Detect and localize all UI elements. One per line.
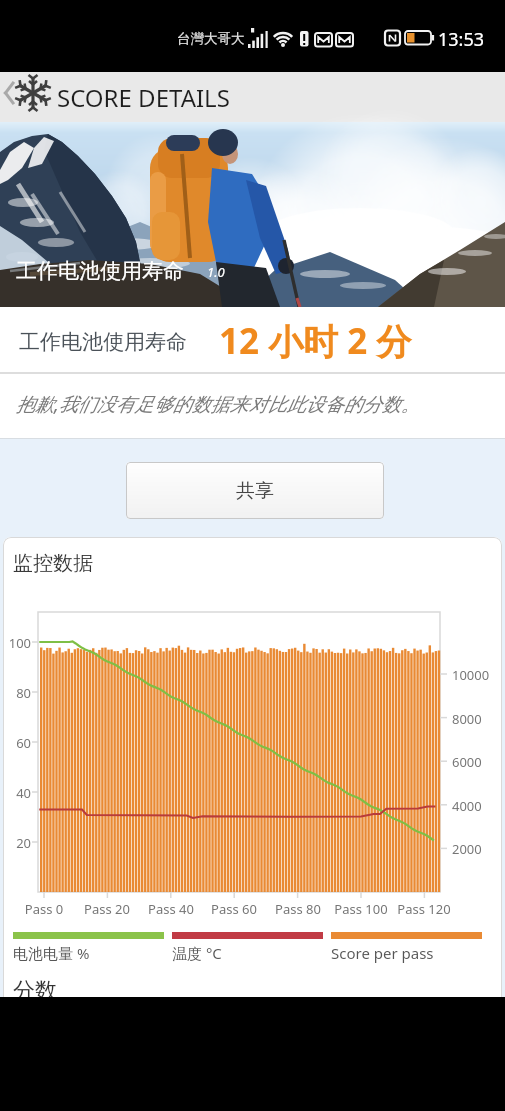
button[interactable]: 共享 xyxy=(126,462,384,519)
button[interactable] xyxy=(0,72,52,122)
staticText: 20 xyxy=(0,834,31,852)
staticText: Pass 40 xyxy=(136,900,206,918)
staticText: Score per pass xyxy=(331,943,434,963)
staticText: 台灣大哥大 xyxy=(177,30,245,47)
staticText: 60 xyxy=(0,734,31,752)
staticText: 2000 xyxy=(452,840,482,858)
staticText: 8000 xyxy=(452,710,482,728)
staticText: 1.0 xyxy=(207,263,225,281)
staticText: 12 小时 2 分 xyxy=(219,317,412,365)
staticText: 100 xyxy=(0,634,31,652)
staticText: 温度 °C xyxy=(172,943,222,963)
staticText: 4000 xyxy=(452,797,482,815)
staticText: Pass 20 xyxy=(72,900,142,918)
staticText: Pass 120 xyxy=(389,900,459,918)
staticText: 80 xyxy=(0,684,31,702)
staticText: 电池电量 % xyxy=(13,943,90,963)
staticText: Pass 100 xyxy=(326,900,396,918)
staticText: 工作电池使用寿命 xyxy=(19,329,187,355)
staticText: Pass 80 xyxy=(263,900,333,918)
staticText: 10000 xyxy=(452,666,490,684)
staticText: Pass 0 xyxy=(9,900,79,918)
staticText: 共享 xyxy=(236,479,274,503)
staticText: 13:53 xyxy=(438,27,485,52)
staticText: SCORE DETAILS xyxy=(57,81,230,114)
staticText: 分数 xyxy=(13,977,57,1005)
staticText: 工作电池使用寿命 xyxy=(16,258,184,284)
staticText: 40 xyxy=(0,784,31,802)
staticText: Pass 60 xyxy=(199,900,269,918)
staticText: 抱歉,我们没有足够的数据来对比此设备的分数。 xyxy=(16,391,420,417)
staticText: 6000 xyxy=(452,753,482,771)
staticText: 监控数据 xyxy=(13,551,93,576)
